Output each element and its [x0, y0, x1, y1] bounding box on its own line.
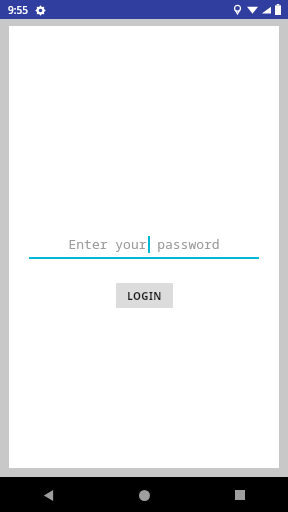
staticText: password — [149, 235, 220, 253]
button[interactable]: Home — [129, 480, 159, 510]
staticText: LOGIN — [127, 289, 162, 303]
button[interactable]: Recent apps — [225, 480, 255, 510]
button[interactable]: Back — [33, 480, 63, 510]
button[interactable]: Password input — [29, 229, 259, 259]
button[interactable]: LOGIN — [116, 283, 173, 308]
staticText: Enter your — [68, 235, 147, 253]
staticText: 9:55 — [8, 3, 28, 17]
